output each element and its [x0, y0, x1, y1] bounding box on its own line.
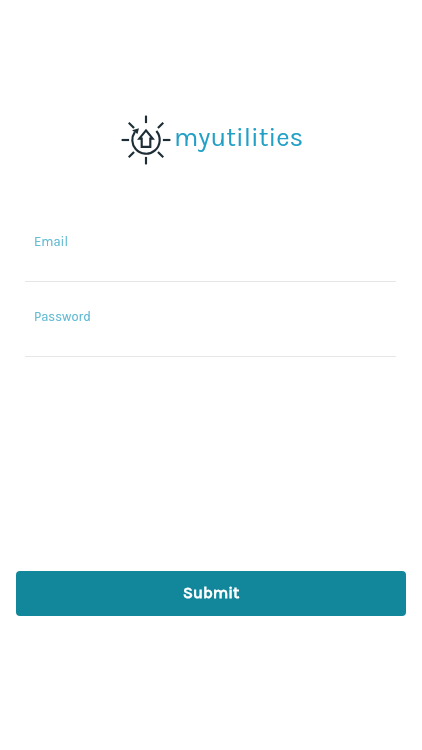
- other: myutilities logo: [121, 115, 171, 165]
- button[interactable]: Email: [25, 225, 396, 281]
- button[interactable]: Submit: [16, 571, 406, 616]
- staticText: myutilities: [174, 122, 304, 152]
- staticText: Email: [34, 234, 69, 249]
- staticText: Submit: [183, 583, 240, 602]
- staticText: Password: [34, 309, 91, 324]
- button[interactable]: Password: [25, 300, 396, 356]
